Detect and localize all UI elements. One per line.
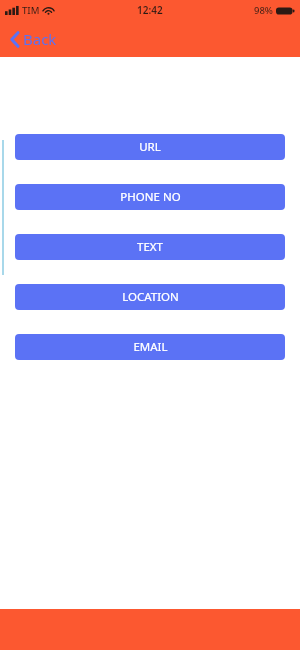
button[interactable]: URL: [15, 134, 285, 160]
staticText: 98%: [254, 4, 273, 17]
staticText: TEXT: [137, 239, 163, 255]
staticText: PHONE NO: [120, 189, 181, 205]
staticText: URL: [139, 139, 161, 155]
staticText: EMAIL: [133, 339, 168, 355]
button[interactable]: EMAIL: [15, 334, 285, 360]
button[interactable]: PHONE NO: [15, 184, 285, 210]
staticText: LOCATION: [122, 289, 179, 305]
button[interactable]: Back: [7, 25, 60, 53]
staticText: TIM: [22, 4, 40, 17]
button[interactable]: LOCATION: [15, 284, 285, 310]
button[interactable]: TEXT: [15, 234, 285, 260]
staticText: Back: [23, 29, 57, 49]
staticText: 12:42: [137, 3, 163, 17]
